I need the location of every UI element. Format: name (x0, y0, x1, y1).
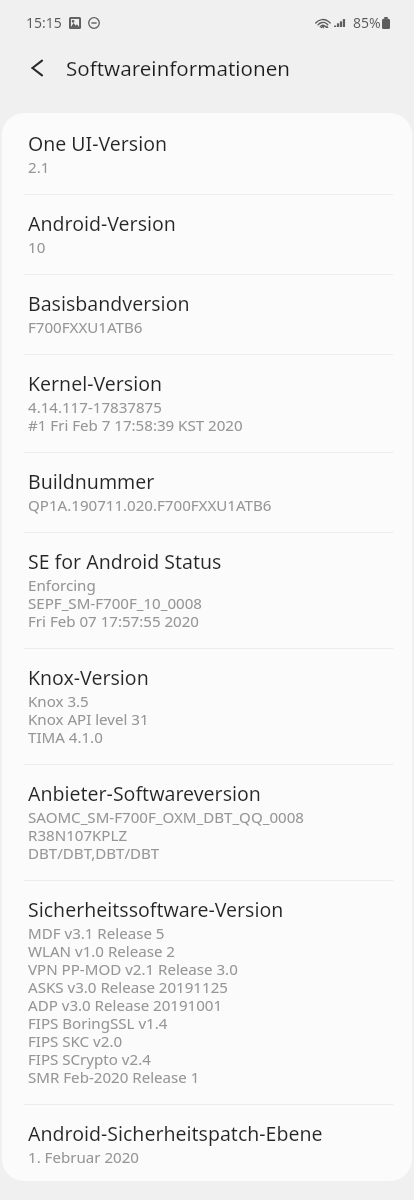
staticText: F700FXXU1ATB6 (28, 319, 143, 337)
staticText: 10 (28, 239, 46, 257)
staticText: 2.1 (28, 159, 50, 177)
staticText: Android-Version (28, 210, 176, 237)
button[interactable]: Sicherheitssoftware-Version (2, 881, 412, 1105)
button[interactable]: Knox-Version (2, 649, 412, 765)
button[interactable]: Android-Version (2, 195, 412, 275)
staticText: QP1A.190711.020.F700FXXU1ATB6 (28, 497, 272, 515)
staticText: Kernel-Version (28, 370, 163, 397)
staticText: Buildnummer (28, 468, 155, 495)
staticText: Basisbandversion (28, 290, 190, 317)
button[interactable]: Android-Sicherheitspatch-Ebene (2, 1105, 412, 1181)
staticText: 1. Februar 2020 (28, 1149, 139, 1164)
button[interactable]: Anbieter-Softwareversion (2, 765, 412, 881)
staticText: 15:15 (26, 13, 62, 32)
button[interactable]: SE for Android Status (2, 533, 412, 649)
button[interactable]: Buildnummer (2, 453, 412, 533)
button[interactable]: Back (17, 48, 57, 88)
staticText: Sicherheitssoftware-Version (28, 896, 284, 923)
staticText: SAOMC_SM-F700F_OXM_DBT_QQ_0008 R38N107KP… (28, 809, 304, 863)
button[interactable]: Basisbandversion (2, 275, 412, 355)
button[interactable]: Kernel-Version (2, 355, 412, 453)
staticText: Android-Sicherheitspatch-Ebene (28, 1120, 323, 1147)
staticText: Knox 3.5 Knox API level 31 TIMA 4.1.0 (28, 693, 149, 747)
staticText: Knox-Version (28, 664, 149, 691)
staticText: 85% (353, 13, 381, 32)
staticText: MDF v3.1 Release 5 WLAN v1.0 Release 2 V… (28, 925, 238, 1087)
button[interactable]: One UI-Version (2, 115, 412, 195)
staticText: Enforcing SEPF_SM-F700F_10_0008 Fri Feb … (28, 577, 202, 631)
staticText: 4.14.117-17837875 #1 Fri Feb 7 17:58:39 … (28, 399, 243, 435)
staticText: Softwareinformationen (66, 54, 290, 82)
staticText: SE for Android Status (28, 548, 222, 575)
staticText: One UI-Version (28, 130, 168, 157)
staticText: Anbieter-Softwareversion (28, 780, 261, 807)
